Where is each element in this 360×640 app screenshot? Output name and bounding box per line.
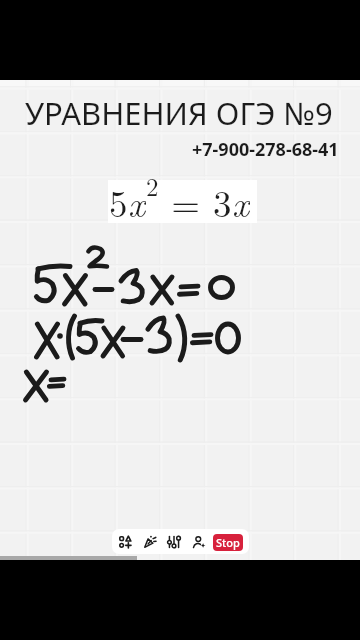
staticText: +7-900-278-68-41 bbox=[192, 137, 339, 162]
button[interactable]: Add person bbox=[188, 529, 210, 554]
staticText: 3 bbox=[213, 175, 232, 218]
staticText: x bbox=[128, 175, 146, 218]
button[interactable]: Effects bbox=[139, 529, 161, 554]
staticText: Stop bbox=[216, 535, 240, 550]
staticText: 2 bbox=[146, 168, 159, 203]
staticText: 5 bbox=[109, 175, 128, 218]
button[interactable]: Adjust bbox=[163, 529, 185, 554]
button[interactable]: Shapes bbox=[114, 529, 136, 554]
button[interactable]: Stop bbox=[213, 534, 243, 551]
staticText: УРАВНЕНИЯ ОГЭ №9 bbox=[25, 92, 333, 134]
staticText: = bbox=[159, 175, 213, 218]
staticText: x bbox=[232, 175, 250, 218]
